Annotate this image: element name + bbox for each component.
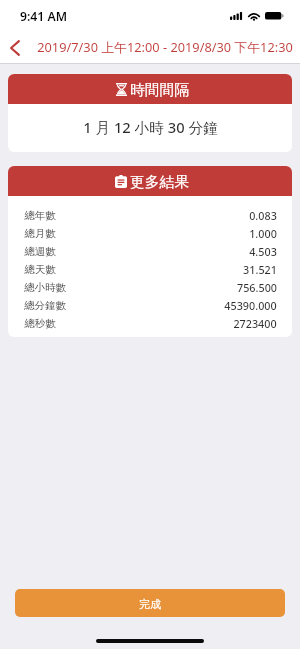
button[interactable]: 總年數 [8, 206, 292, 224]
staticText: 31.521 [243, 262, 277, 277]
staticText: 總天數 [24, 263, 56, 276]
staticText: 1 月 12 小時 30 分鐘 [83, 117, 218, 137]
staticText: 總月數 [24, 227, 56, 240]
button[interactable]: 總月數 [8, 224, 292, 242]
other: Battery [265, 12, 284, 20]
staticText: 1.000 [249, 226, 277, 241]
button[interactable]: 總分鐘數 [8, 296, 292, 314]
button[interactable]: 總秒數 [8, 314, 292, 332]
staticText: 9:41 AM [20, 8, 67, 25]
button[interactable]: 總天數 [8, 260, 292, 278]
staticText: 2723400 [233, 316, 277, 331]
button[interactable]: 完成 [15, 589, 285, 617]
other: Cellular signal [230, 12, 243, 20]
staticText: 756.500 [237, 280, 277, 295]
staticText: 更多結果 [130, 173, 189, 192]
staticText: 0.083 [249, 208, 277, 223]
staticText: 總分鐘數 [24, 299, 66, 312]
staticText: 45390.000 [224, 298, 277, 313]
staticText: 總秒數 [24, 317, 56, 330]
staticText: 總週數 [24, 245, 56, 258]
staticText: 完成 [139, 597, 161, 611]
button[interactable]: 總小時數 [8, 278, 292, 296]
staticText: 總小時數 [24, 281, 66, 294]
staticText: 總年數 [24, 209, 56, 222]
staticText: 時間間隔 [130, 81, 189, 100]
button[interactable]: 總週數 [8, 242, 292, 260]
button[interactable]: Back [4, 37, 26, 59]
staticText: 4.503 [249, 244, 277, 259]
other: Wi-Fi [248, 12, 260, 21]
staticText: 2019/7/30 上午12:00 - 2019/8/30 下午12:30 [37, 38, 293, 55]
